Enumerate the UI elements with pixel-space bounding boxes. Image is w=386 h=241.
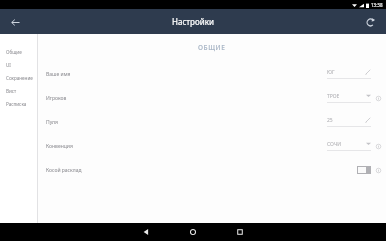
staticText: Ваше имя: [46, 71, 71, 78]
button[interactable]: Toggle: [357, 166, 371, 174]
button[interactable]: Recents: [232, 224, 248, 240]
button[interactable]: Home: [185, 224, 201, 240]
staticText: 25: [327, 117, 333, 124]
staticText: ЮГ: [327, 69, 335, 76]
button[interactable]: Косой расклад: [38, 158, 386, 182]
button[interactable]: Общие: [6, 45, 37, 58]
staticText: Пуля: [46, 119, 58, 126]
button[interactable]: Вист: [6, 84, 37, 97]
button[interactable]: Ваше имя: [38, 62, 386, 86]
button[interactable]: Пуля: [38, 110, 386, 134]
button[interactable]: Info: [374, 94, 382, 102]
button[interactable]: Info: [374, 166, 382, 174]
staticText: Расписка: [6, 101, 27, 107]
staticText: Игроков: [46, 95, 67, 102]
staticText: Косой расклад: [46, 167, 82, 174]
button[interactable]: Back: [138, 224, 154, 240]
button[interactable]: Back: [6, 13, 24, 31]
staticText: Вист: [6, 88, 17, 94]
button[interactable]: UI: [6, 58, 37, 71]
staticText: Сохранение: [6, 75, 33, 81]
staticText: Общие: [6, 49, 22, 55]
button[interactable]: Игроков: [38, 86, 386, 110]
staticText: 13:38: [371, 2, 383, 8]
button[interactable]: Расписка: [6, 97, 37, 110]
staticText: UI: [6, 62, 11, 68]
button[interactable]: Конвенция: [38, 134, 386, 158]
staticText: ОБЩИЕ: [198, 43, 226, 52]
staticText: ТРОЕ: [327, 93, 340, 100]
staticText: СОЧИ: [327, 141, 342, 148]
button[interactable]: Сохранение: [6, 71, 37, 84]
staticText: Конвенция: [46, 143, 73, 150]
staticText: Настройки: [172, 16, 214, 27]
button[interactable]: Info: [374, 142, 382, 150]
button[interactable]: Reset: [361, 13, 379, 31]
